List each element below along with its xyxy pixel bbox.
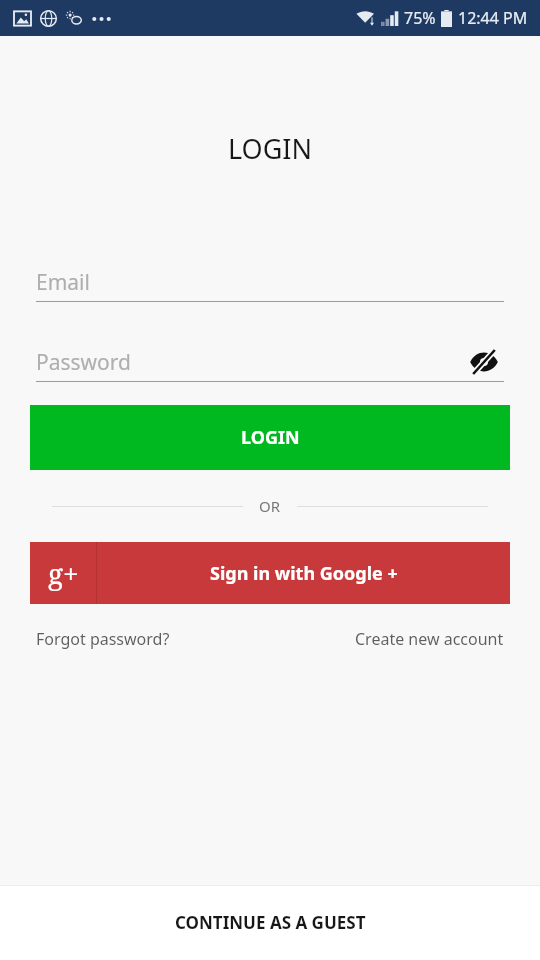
staticText: OR: [259, 496, 281, 516]
staticText: Sign in with Google +: [210, 561, 398, 586]
button[interactable]: Show password: [464, 343, 504, 381]
staticText: Forgot password?: [36, 628, 170, 650]
staticText: 75%: [404, 7, 436, 29]
button[interactable]: Create new account: [355, 624, 504, 654]
staticText: Email: [36, 268, 90, 297]
button[interactable]: Forgot password?: [36, 624, 170, 654]
staticText: 12:44 PM: [458, 7, 528, 29]
staticText: Password: [36, 348, 131, 377]
staticText: CONTINUE AS A GUEST: [175, 911, 366, 934]
button[interactable]: g+: [30, 542, 510, 604]
staticText: LOGIN: [228, 130, 313, 167]
staticText: g+: [48, 554, 79, 592]
staticText: LOGIN: [241, 425, 300, 450]
staticText: Create new account: [355, 628, 504, 650]
button[interactable]: CONTINUE AS A GUEST: [0, 885, 540, 960]
button[interactable]: LOGIN: [30, 405, 510, 470]
